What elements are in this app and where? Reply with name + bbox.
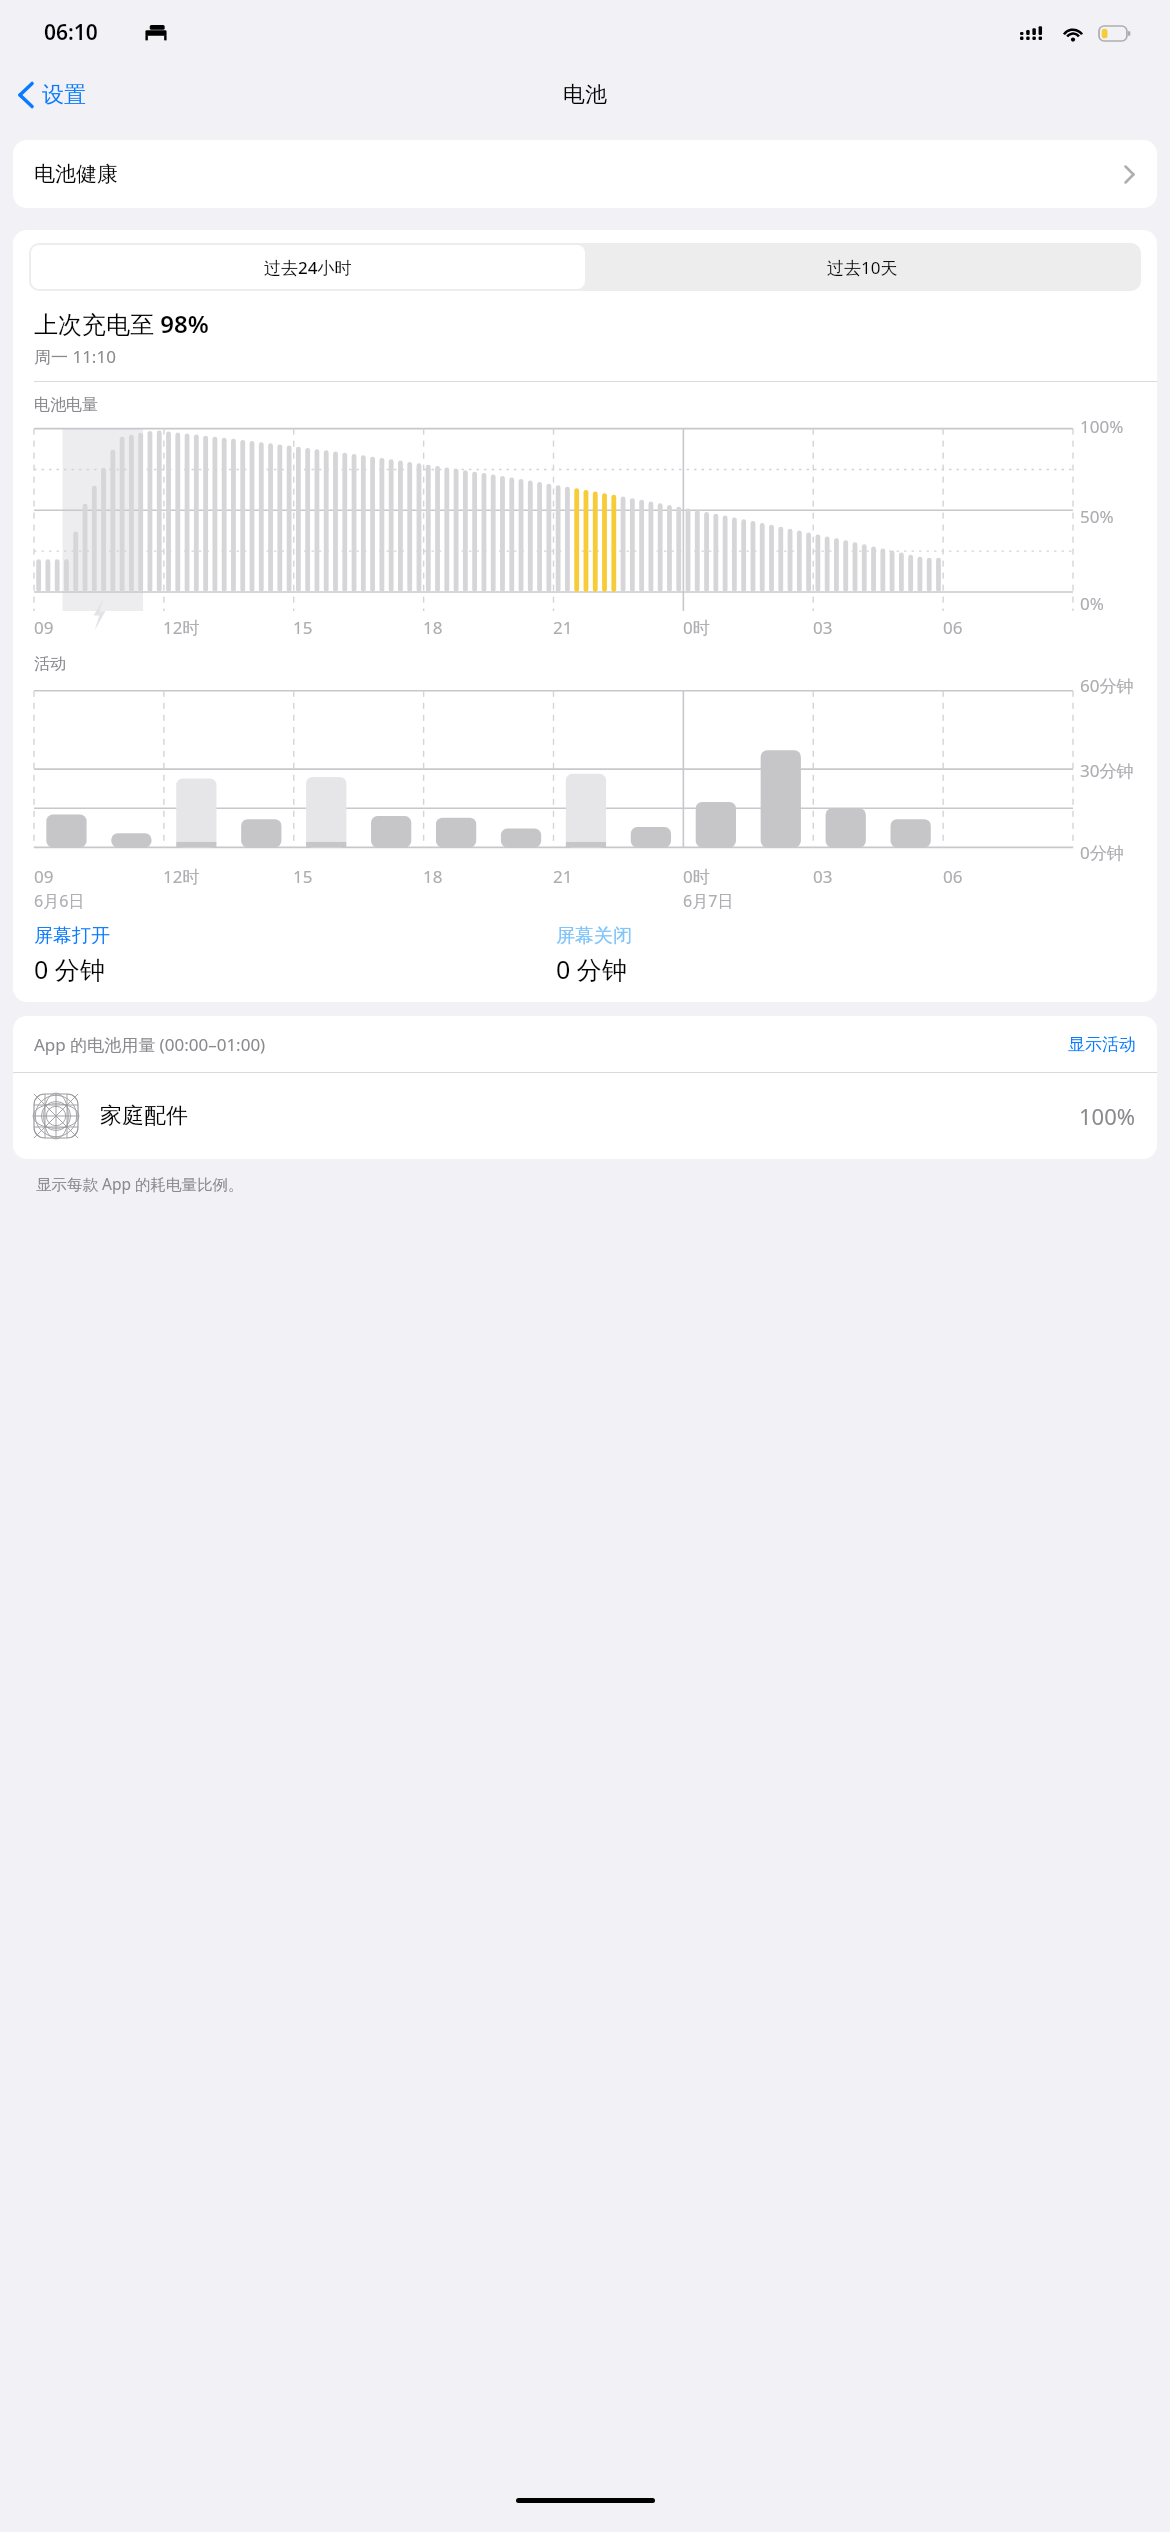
- staticText: 21: [553, 616, 573, 639]
- staticText: 06:10: [44, 18, 98, 47]
- staticText: App 的电池用量 (00:00–01:00): [34, 1033, 266, 1056]
- staticText: 0时: [683, 616, 710, 639]
- button[interactable]: 设置: [0, 75, 100, 115]
- staticText: 电池: [563, 81, 607, 109]
- staticText: 21: [553, 865, 573, 888]
- staticText: 18: [423, 865, 443, 888]
- button[interactable]: 家庭配件: [13, 1073, 1157, 1159]
- staticText: 15: [293, 865, 313, 888]
- staticText: 6月7日: [683, 890, 734, 912]
- staticText: 屏幕打开: [34, 924, 110, 948]
- staticText: 30分钟: [1080, 759, 1134, 782]
- staticText: 过去10天: [827, 256, 898, 279]
- staticText: 09: [34, 865, 54, 888]
- staticText: 18: [423, 616, 443, 639]
- staticText: 100%: [1079, 1101, 1136, 1131]
- staticText: 显示每款 App 的耗电量比例。: [36, 1173, 244, 1194]
- staticText: 03: [813, 616, 833, 639]
- staticText: 06: [943, 865, 963, 888]
- staticText: 12时: [163, 616, 200, 639]
- button[interactable]: 显示活动: [1068, 1034, 1136, 1055]
- staticText: 50%: [1080, 505, 1114, 528]
- staticText: 屏幕关闭: [556, 924, 632, 948]
- staticText: 12时: [163, 865, 200, 888]
- staticText: 06: [943, 616, 963, 639]
- staticText: 0 分钟: [34, 952, 105, 986]
- staticText: 6月6日: [34, 890, 85, 912]
- staticText: 电池电量: [34, 395, 98, 415]
- staticText: 09: [34, 616, 54, 639]
- staticText: 家庭配件: [100, 1102, 188, 1130]
- staticText: 0%: [1080, 592, 1104, 615]
- button[interactable]: 过去24小时: [31, 245, 585, 289]
- button[interactable]: 过去10天: [585, 245, 1139, 289]
- staticText: 100%: [1080, 415, 1124, 438]
- staticText: 0分钟: [1080, 841, 1124, 864]
- staticText: 设置: [42, 81, 86, 109]
- staticText: 周一 11:10: [34, 345, 116, 368]
- staticText: 活动: [34, 654, 66, 674]
- staticText: 03: [813, 865, 833, 888]
- staticText: 电池健康: [34, 161, 118, 187]
- staticText: 0 分钟: [556, 952, 627, 986]
- staticText: 上次充电至 98%: [34, 307, 209, 340]
- staticText: 15: [293, 616, 313, 639]
- staticText: 0时: [683, 865, 710, 888]
- button[interactable]: 电池健康: [13, 140, 1157, 208]
- staticText: 60分钟: [1080, 674, 1134, 697]
- staticText: 过去24小时: [264, 256, 352, 279]
- staticText: 显示活动: [1068, 1034, 1136, 1055]
